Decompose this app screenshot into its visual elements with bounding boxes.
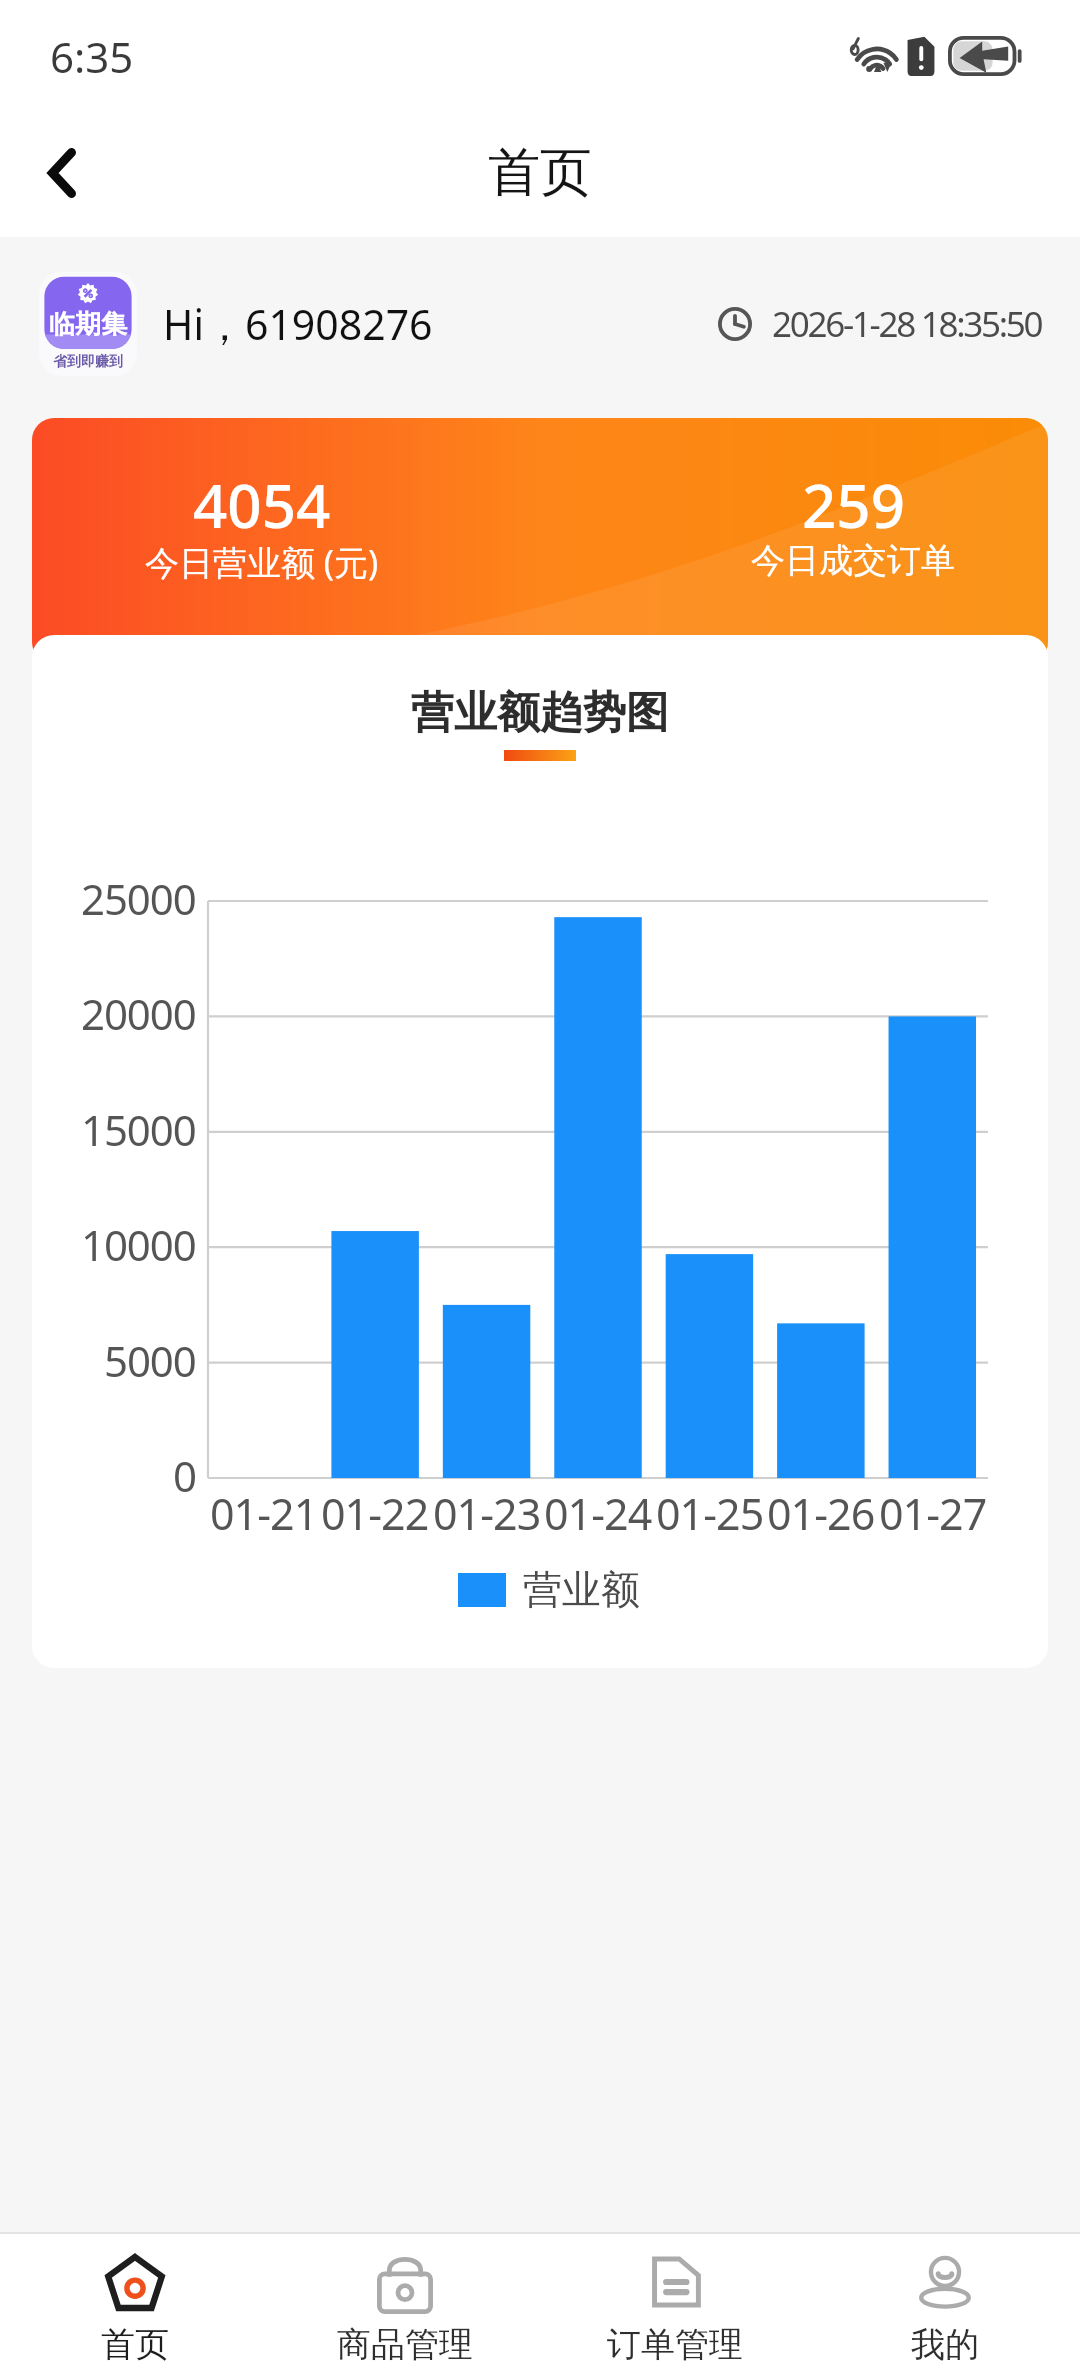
button[interactable]: 商品管理	[270, 2234, 540, 2375]
staticText: 01-25	[656, 1484, 764, 1543]
staticText: 4054	[193, 464, 331, 546]
staticText: 01-24	[544, 1484, 652, 1543]
staticText: 15000	[81, 1101, 196, 1158]
staticText: Hi，61908276	[163, 296, 433, 352]
staticText: 25000	[81, 870, 196, 927]
staticText: 营业额	[523, 1565, 640, 1614]
staticText: 01-27	[879, 1484, 987, 1543]
staticText: 01-23	[433, 1484, 541, 1543]
staticText: 2026-1-28 18:35:50	[772, 300, 1042, 348]
staticText: 商品管理	[337, 2323, 473, 2366]
staticText: 01-21	[210, 1484, 318, 1543]
staticText: 今日成交订单	[751, 539, 955, 582]
staticText: 我的	[911, 2323, 979, 2366]
staticText: 今日营业额 (元)	[145, 539, 379, 585]
staticText: 营业额趋势图	[411, 686, 669, 740]
staticText: 6:35	[50, 28, 134, 85]
staticText: 01-22	[321, 1484, 429, 1543]
staticText: 5000	[104, 1332, 196, 1389]
staticText: 订单管理	[607, 2323, 743, 2366]
button[interactable]: 订单管理	[540, 2234, 810, 2375]
button[interactable]: 首页	[0, 2234, 270, 2375]
button[interactable]: Back	[10, 132, 114, 214]
staticText: 首页	[101, 2323, 169, 2366]
staticText: 省到即赚到	[53, 353, 123, 371]
staticText: 01-26	[767, 1484, 875, 1543]
staticText: 20000	[81, 985, 196, 1042]
staticText: 10000	[81, 1216, 196, 1273]
staticText: 首页	[488, 140, 592, 206]
staticText: 临期集	[49, 308, 127, 341]
staticText: 259	[802, 464, 905, 546]
staticText: 0	[173, 1447, 196, 1504]
button[interactable]: 我的	[810, 2234, 1080, 2375]
